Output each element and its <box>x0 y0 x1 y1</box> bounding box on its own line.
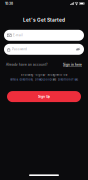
button[interactable]: E-mail <box>4 30 84 41</box>
button[interactable]: Sign in here <box>63 63 82 66</box>
button[interactable]: Sign Up <box>7 91 81 102</box>
staticText: By clicking 'Sign up' you agree to our <box>20 73 67 76</box>
staticText: Password <box>12 48 27 51</box>
button[interactable]: Password <box>4 44 84 55</box>
staticText: and <box>51 78 57 81</box>
staticText: condition of use. <box>57 78 78 81</box>
staticText: 10:38 <box>5 2 13 5</box>
staticText: , <box>32 78 34 81</box>
staticText: E-mail <box>13 34 23 37</box>
staticText: Sign Up <box>38 95 50 99</box>
staticText: Sign in here <box>63 63 82 66</box>
staticText: Let's Get Started <box>23 17 65 23</box>
staticText: privacy policy <box>34 78 51 81</box>
staticText: Already have an account? <box>6 63 48 66</box>
staticText: terms & conditions <box>9 78 32 81</box>
